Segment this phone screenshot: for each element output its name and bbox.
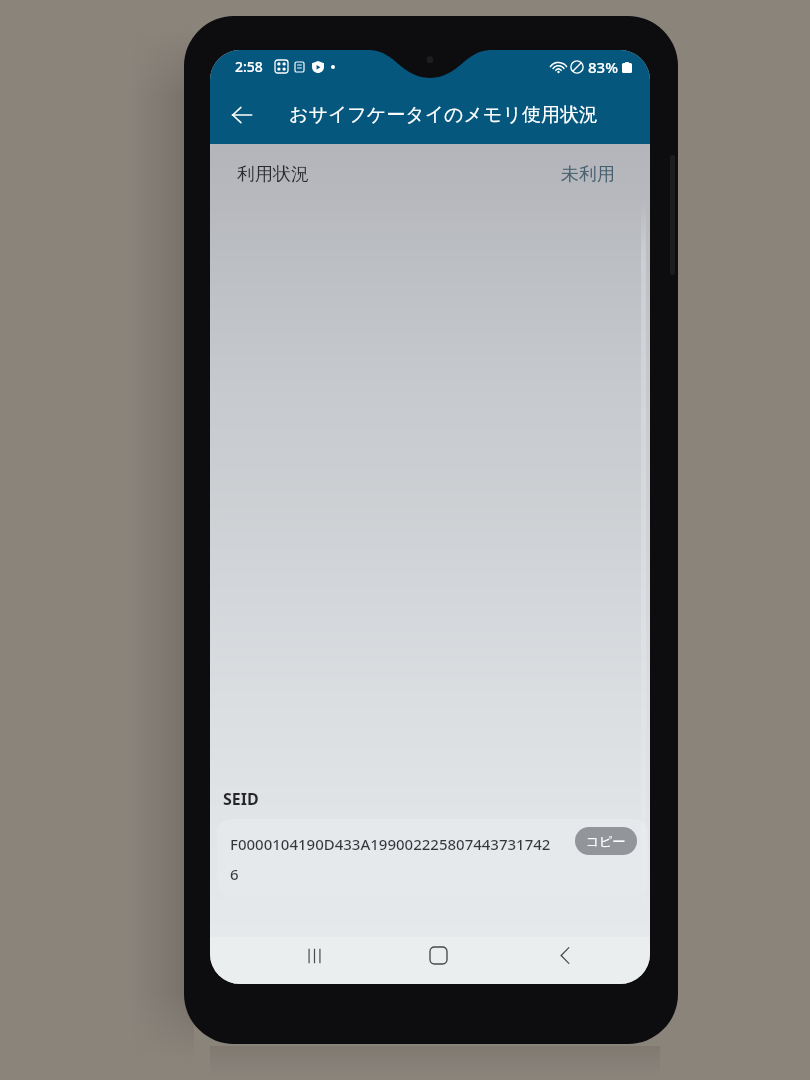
staticText: おサイフケータイのメモリ使用状況: [289, 103, 598, 127]
button[interactable]: Home: [412, 932, 464, 979]
staticText: 83%: [588, 57, 618, 77]
button[interactable]: 利用状況: [210, 144, 650, 204]
staticText: 2:58: [235, 57, 263, 76]
button[interactable]: Recents: [288, 932, 340, 979]
staticText: SEID: [223, 788, 259, 810]
staticText: コピー: [586, 833, 626, 849]
button[interactable]: Back: [539, 932, 591, 979]
staticText: F0000104190D433A199002225807443731742: [230, 834, 551, 854]
button[interactable]: コピー: [575, 827, 637, 855]
button[interactable]: Back: [220, 93, 264, 137]
staticText: 利用状況: [237, 163, 309, 186]
staticText: 未利用: [561, 163, 615, 186]
staticText: 6: [230, 864, 239, 884]
